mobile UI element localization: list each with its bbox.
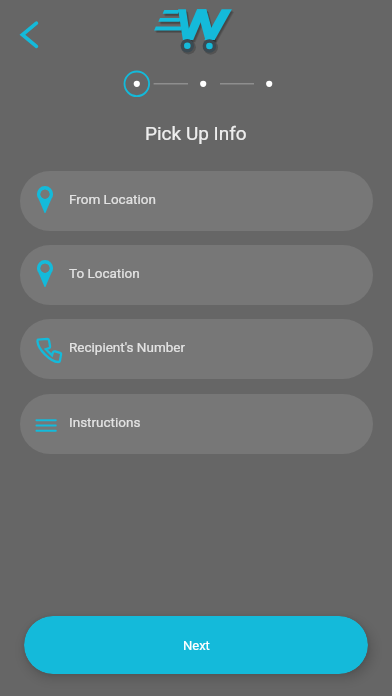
button[interactable]: Next <box>24 616 368 674</box>
staticText: Pick Up Info <box>145 122 247 144</box>
button[interactable]: To Location <box>20 245 373 305</box>
button[interactable]: From Location <box>20 171 373 231</box>
staticText: Instructions <box>69 414 141 430</box>
button[interactable]: Instructions <box>20 394 373 454</box>
staticText: Recipient's Number <box>69 339 186 355</box>
button[interactable]: Recipient's Number <box>20 319 373 379</box>
button[interactable]: Back <box>6 10 54 58</box>
staticText: From Location <box>69 191 156 207</box>
staticText: To Location <box>69 265 140 281</box>
staticText: Next <box>183 638 210 653</box>
